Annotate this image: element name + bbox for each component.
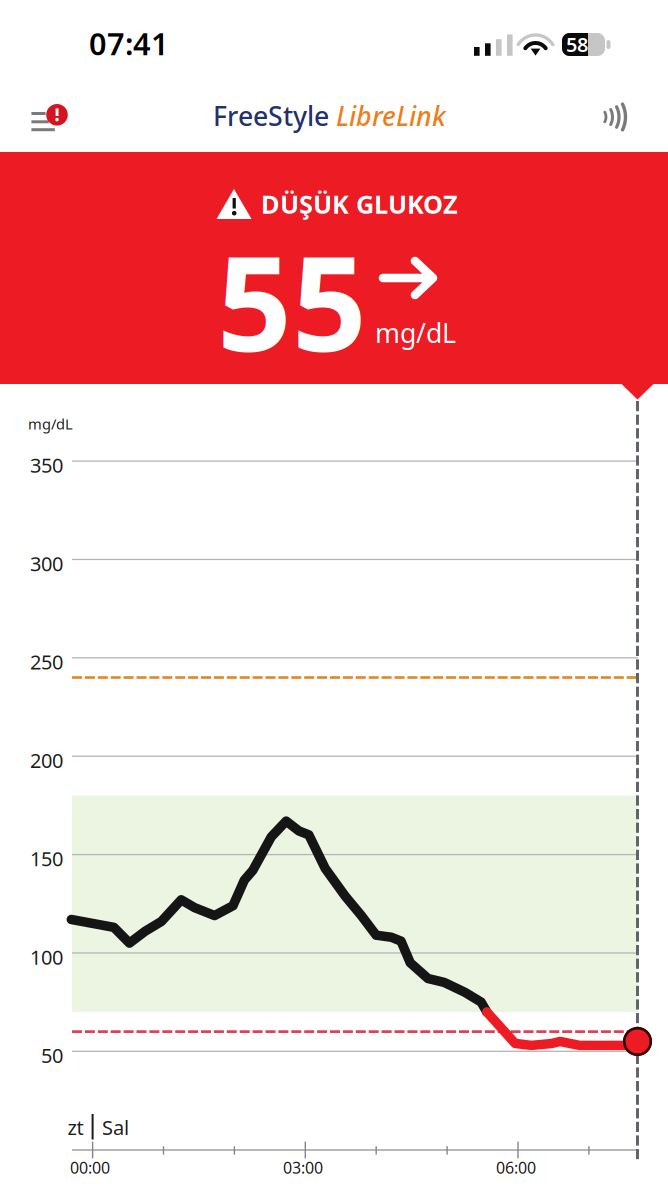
staticText: 58 bbox=[566, 31, 588, 58]
staticText: mg/dL bbox=[28, 414, 73, 433]
button[interactable]: Scan sensor bbox=[574, 88, 634, 146]
staticText: 07:41 bbox=[89, 23, 169, 64]
staticText: Sal bbox=[102, 1114, 129, 1141]
staticText: zt bbox=[67, 1114, 83, 1141]
staticText: FreeStyle bbox=[213, 98, 329, 133]
staticText: mg/dL bbox=[375, 315, 456, 350]
button[interactable]: FreeStyle bbox=[213, 98, 446, 133]
staticText: 03:00 bbox=[283, 1157, 323, 1178]
staticText: 55 bbox=[217, 214, 367, 387]
staticText: 200 bbox=[30, 747, 63, 773]
staticText: 350 bbox=[30, 452, 63, 478]
staticText: 06:00 bbox=[496, 1157, 536, 1178]
staticText: 50 bbox=[41, 1042, 63, 1069]
staticText: 00:00 bbox=[70, 1157, 110, 1178]
staticText: 150 bbox=[30, 845, 63, 872]
staticText: 250 bbox=[30, 648, 63, 675]
staticText: 300 bbox=[30, 550, 63, 577]
staticText: LibreLink bbox=[336, 98, 446, 133]
staticText: DÜŞÜK GLUKOZ bbox=[261, 187, 458, 221]
staticText: 100 bbox=[30, 944, 63, 970]
button[interactable]: Menu and alerts bbox=[14, 88, 76, 146]
